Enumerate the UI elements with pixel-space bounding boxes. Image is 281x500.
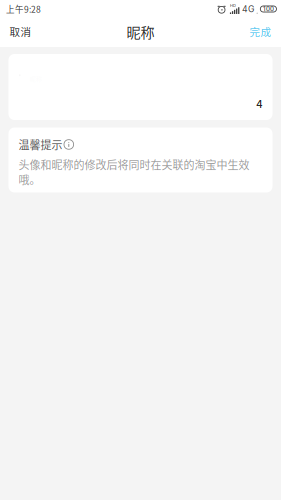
staticText: 100 (263, 5, 274, 13)
button[interactable]: 取消 (0, 18, 41, 45)
staticText: 4G (242, 4, 254, 14)
staticText: 昵称 (126, 21, 154, 42)
button[interactable]: 完成 (240, 18, 281, 45)
staticText: 完成 (250, 24, 272, 39)
staticText: 头像和昵称的修改后将同时在关联的淘宝中生效哦。 (18, 156, 249, 187)
staticText: 取消 (9, 24, 31, 39)
staticText: HD (230, 3, 236, 8)
button[interactable]: 昵称 (8, 54, 272, 120)
staticText: 上午9:28 (6, 3, 41, 15)
staticText: 4 (256, 98, 263, 110)
staticText: 温馨提示 (18, 136, 62, 152)
